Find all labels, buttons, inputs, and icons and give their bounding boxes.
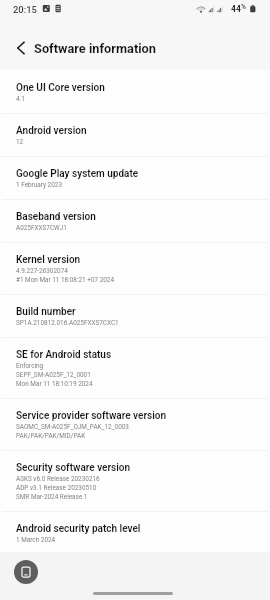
button[interactable]: One UI Core version [0,71,270,113]
staticText: SP1A.210812.016.A025FXXS7CXC1 [16,318,119,327]
button[interactable]: Android security patch level [0,512,270,552]
staticText: 1 March 2024 [16,535,56,542]
staticText: 20:15 [13,4,37,15]
staticText: Kernel version [16,253,81,265]
staticText: Baseband version [16,210,96,222]
staticText: One UI Core version [16,81,105,93]
staticText: Android version [16,124,87,136]
button[interactable]: Kernel version [0,243,270,294]
staticText: % [241,3,246,11]
staticText: Service provider software version [16,409,166,421]
staticText: Build number [16,305,76,317]
staticText: 1 February 2023 [16,180,62,189]
staticText: SE for Android status [16,348,112,360]
staticText: Mon Mar 11 18:10:19 2024 [16,379,93,388]
staticText: 44 [231,4,241,14]
button[interactable]: Back [10,37,32,59]
button[interactable]: Android version [0,114,270,156]
staticText: Android security patch level [16,522,141,534]
button[interactable]: Service provider software version [0,399,270,450]
staticText: SAOMC_SM-A025F_OJM_PAK_12_0003 [16,422,129,431]
button[interactable]: Build number [0,295,270,337]
staticText: ASKS v6.0 Release 20230216 [16,474,100,483]
button[interactable]: Baseband version [0,200,270,242]
staticText: Google Play system update [16,167,139,179]
button[interactable]: Google Play system update [0,157,270,199]
staticText: Security software version [16,461,131,473]
staticText: Enforcing [16,361,44,370]
button[interactable]: SE for Android status [0,338,270,398]
staticText: 12 [16,137,24,146]
button[interactable]: Smart View [14,560,38,584]
button[interactable]: Security software version [0,451,270,511]
staticText: ADP v3.1 Release 20230510 [16,483,97,492]
staticText: Software information [34,41,157,56]
staticText: #1 Mon Mar 11 18:08:21 +07 2024 [16,275,115,284]
staticText: A025FXXS7CWJ1 [16,223,67,232]
staticText: SMR Mar-2024 Release 1 [16,492,88,501]
staticText: PAK/PAK/PAK/MID/PAK [16,431,86,440]
staticText: 4.1 [16,94,25,103]
staticText: SEPF_SM-A025F_12_0001 [16,370,91,379]
staticText: 4.9.227-26302074 [16,266,68,275]
